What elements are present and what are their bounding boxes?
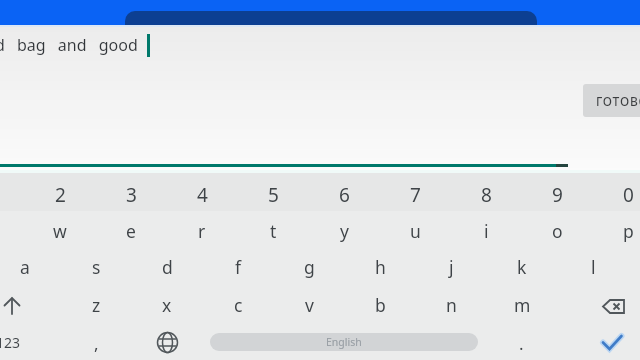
button[interactable]: l bbox=[563, 250, 623, 284]
button[interactable] bbox=[593, 294, 633, 318]
button[interactable]: 6 bbox=[314, 178, 374, 212]
button[interactable]: t bbox=[243, 214, 303, 248]
button[interactable]: 4 bbox=[172, 178, 232, 212]
button[interactable]: f bbox=[208, 250, 268, 284]
button[interactable]: , bbox=[66, 326, 126, 360]
staticText: t bbox=[270, 219, 277, 243]
button[interactable]: k bbox=[492, 250, 552, 284]
staticText: 6 bbox=[339, 182, 350, 208]
staticText: u bbox=[410, 219, 421, 243]
staticText: 4 bbox=[197, 182, 208, 208]
button[interactable]: j bbox=[421, 250, 481, 284]
button[interactable]: r bbox=[172, 214, 232, 248]
staticText: English bbox=[326, 335, 362, 349]
button[interactable] bbox=[592, 325, 632, 359]
staticText: h bbox=[375, 255, 386, 279]
staticText: 5 bbox=[268, 182, 279, 208]
button[interactable]: z bbox=[66, 288, 126, 322]
staticText: s bbox=[92, 255, 101, 279]
staticText: 2 bbox=[55, 182, 66, 208]
button[interactable]: w bbox=[30, 214, 90, 248]
staticText: r bbox=[198, 219, 206, 243]
staticText: p bbox=[623, 219, 634, 243]
button[interactable]: g bbox=[279, 250, 339, 284]
staticText: n bbox=[446, 293, 457, 317]
staticText: d bbox=[162, 255, 173, 279]
staticText: l bbox=[591, 255, 596, 279]
staticText: o bbox=[552, 219, 563, 243]
button[interactable]: 7 bbox=[385, 178, 445, 212]
staticText: j bbox=[449, 255, 454, 279]
button[interactable]: u bbox=[385, 214, 445, 248]
staticText: 7 bbox=[410, 182, 421, 208]
staticText: , bbox=[94, 332, 99, 355]
button[interactable]: n bbox=[421, 288, 481, 322]
staticText: f bbox=[235, 255, 242, 279]
staticText: . bbox=[519, 332, 524, 355]
staticText: v bbox=[305, 293, 314, 317]
button[interactable]: y bbox=[314, 214, 374, 248]
staticText: y bbox=[340, 219, 349, 243]
staticText: c bbox=[234, 293, 243, 317]
staticText: k bbox=[517, 255, 527, 279]
button[interactable]: m bbox=[492, 288, 552, 322]
button[interactable]: c bbox=[208, 288, 268, 322]
staticText: x bbox=[162, 293, 172, 317]
button[interactable]: 8 bbox=[456, 178, 516, 212]
staticText: 0 bbox=[623, 182, 634, 208]
staticText: ГОТОВО bbox=[596, 93, 640, 109]
staticText: b bbox=[375, 293, 386, 317]
button[interactable]: x bbox=[137, 288, 197, 322]
button[interactable]: o bbox=[527, 214, 587, 248]
staticText: w bbox=[53, 219, 67, 243]
button[interactable]: v bbox=[279, 288, 339, 322]
button[interactable] bbox=[0, 294, 32, 318]
button[interactable]: h bbox=[350, 250, 410, 284]
button[interactable]: 2 bbox=[30, 178, 90, 212]
staticText: m bbox=[514, 293, 531, 317]
button[interactable]: i bbox=[456, 214, 516, 248]
button[interactable]: 5 bbox=[243, 178, 303, 212]
staticText: i bbox=[484, 219, 489, 243]
button[interactable]: English bbox=[210, 333, 478, 351]
button[interactable]: 3 bbox=[101, 178, 161, 212]
button[interactable]: b bbox=[350, 288, 410, 322]
button[interactable]: s bbox=[66, 250, 126, 284]
staticText: 3 bbox=[126, 182, 137, 208]
staticText: 8 bbox=[481, 182, 492, 208]
staticText: ?123 bbox=[0, 333, 21, 352]
button[interactable]: ГОТОВО bbox=[583, 84, 640, 117]
staticText: z bbox=[92, 293, 101, 317]
button[interactable]: d bbox=[137, 250, 197, 284]
staticText: e bbox=[126, 219, 136, 243]
button[interactable]: ?123 bbox=[0, 325, 35, 359]
button[interactable]: 9 bbox=[527, 178, 587, 212]
button[interactable] bbox=[147, 322, 187, 360]
button[interactable]: p bbox=[598, 214, 640, 248]
staticText: g bbox=[304, 255, 315, 279]
staticText: a bbox=[20, 255, 30, 279]
staticText: d bag and good bbox=[0, 34, 138, 56]
button[interactable]: e bbox=[101, 214, 161, 248]
button[interactable]: . bbox=[491, 326, 551, 360]
button[interactable]: 0 bbox=[598, 178, 640, 212]
button[interactable]: a bbox=[0, 250, 55, 284]
staticText: 9 bbox=[552, 182, 563, 208]
